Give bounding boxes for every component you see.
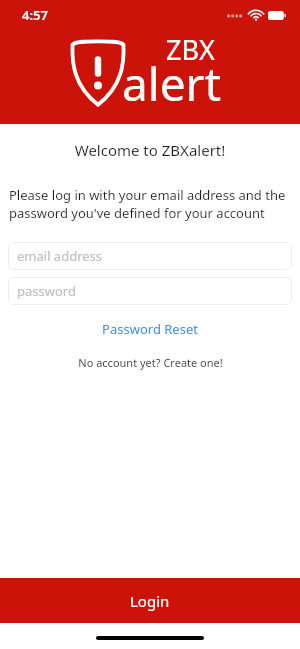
staticText: Please log in with your email address an… xyxy=(9,186,291,222)
other: ZBXalert shield logo xyxy=(70,39,126,107)
button[interactable]: Password Reset xyxy=(0,317,300,341)
button[interactable]: password xyxy=(8,277,292,305)
staticText: email address xyxy=(17,247,103,265)
staticText: alert xyxy=(122,52,222,115)
staticText: Welcome to ZBXalert! xyxy=(0,140,300,160)
staticText: ZBX xyxy=(166,31,215,68)
staticText: No account yet? Create one! xyxy=(78,355,223,370)
button[interactable]: Login xyxy=(0,578,300,623)
staticText: 4:57 xyxy=(22,6,48,24)
staticText: Login xyxy=(130,591,170,611)
button[interactable]: No account yet? Create one! xyxy=(0,352,300,373)
staticText: password xyxy=(17,282,76,300)
staticText: Password Reset xyxy=(102,320,198,338)
button[interactable]: email address xyxy=(8,242,292,270)
